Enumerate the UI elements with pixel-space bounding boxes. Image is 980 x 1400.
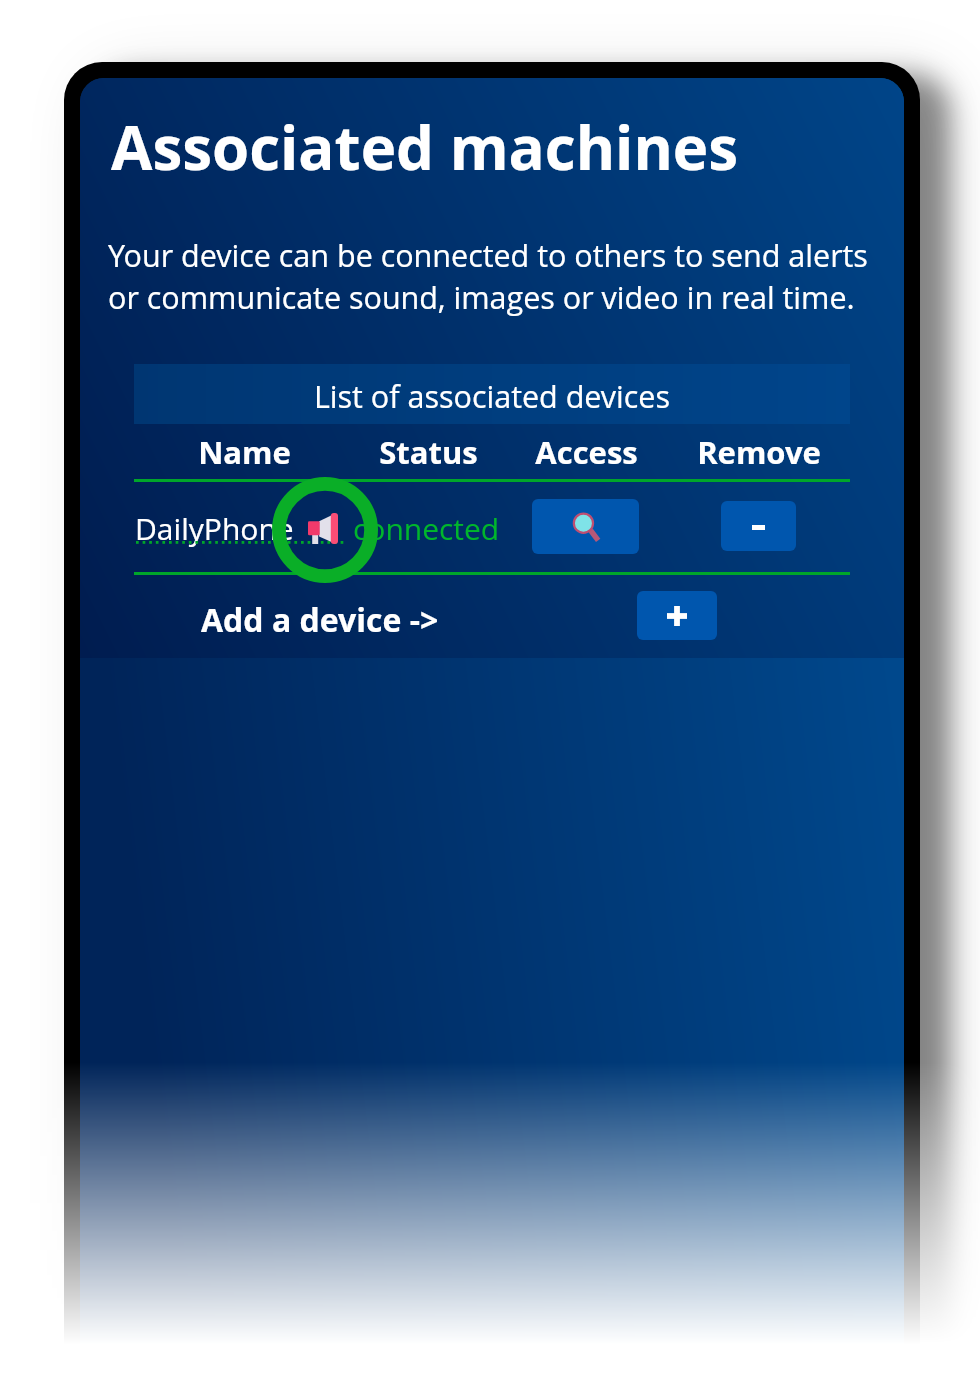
staticText: Your device can be connected to others t…: [108, 234, 908, 318]
button[interactable]: Access device: [532, 499, 639, 554]
staticText: List of associated devices: [314, 375, 671, 417]
staticText: connected: [353, 508, 500, 549]
staticText: Remove: [697, 431, 821, 473]
button[interactable]: Add a device: [637, 591, 717, 640]
staticText: Name: [198, 431, 291, 473]
staticText: Associated machines: [111, 106, 739, 188]
staticText: Status: [379, 431, 478, 473]
staticText: Add a device ->: [201, 598, 439, 642]
staticText: Access: [535, 431, 638, 473]
button[interactable]: Remove device: [721, 501, 796, 551]
staticText: DailyPhone: [135, 508, 294, 549]
button[interactable]: List of associated devices: [134, 364, 850, 424]
